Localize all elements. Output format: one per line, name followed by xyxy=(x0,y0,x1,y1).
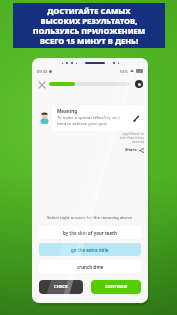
staticText: significant in size that it has several xyxy=(119,131,144,145)
staticText: Select right answer for the meaning abov… xyxy=(47,215,133,221)
button[interactable]: crunch time xyxy=(39,260,141,273)
button[interactable]: by the skin of your teeth xyxy=(39,226,141,239)
staticText: To make a special effort/try very hard t… xyxy=(57,115,120,126)
button[interactable]: Edit xyxy=(132,114,141,123)
staticText: 54% xyxy=(120,69,128,74)
button[interactable]: Share xyxy=(125,147,144,153)
staticText: go the extra mile xyxy=(71,247,109,253)
staticText: Share xyxy=(125,147,137,153)
staticText: CHECK xyxy=(54,284,68,290)
button[interactable]: Meaning xyxy=(52,105,144,131)
button[interactable]: CHECK xyxy=(39,280,83,294)
button[interactable]: CONTINUE xyxy=(91,280,141,294)
staticText: crunch time xyxy=(77,264,104,270)
staticText: ДОСТИГАЙТЕ САМЫХ ВЫСОКИХ РЕЗУЛЬТАТОВ, ПО… xyxy=(13,6,165,46)
staticText: by the skin of your teeth xyxy=(63,230,117,236)
button[interactable]: go the extra mile xyxy=(39,243,141,256)
staticText: 09:33 xyxy=(37,69,48,74)
staticText: CONTINUE xyxy=(105,284,128,290)
button[interactable]: Close xyxy=(37,80,46,89)
button[interactable]: Settings xyxy=(135,80,143,88)
staticText: Meaning xyxy=(57,108,78,114)
